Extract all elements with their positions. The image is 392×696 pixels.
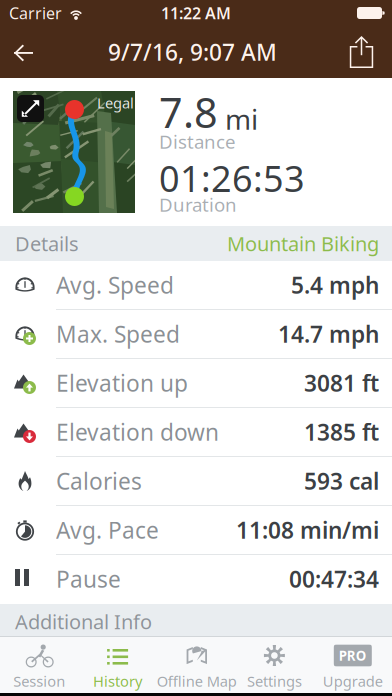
staticText: Settings [247, 671, 302, 691]
staticText: Offline Map [157, 671, 237, 691]
staticText: Session [13, 671, 65, 691]
staticText: PRO [339, 647, 367, 664]
staticText: 14.7 mph [278, 319, 379, 349]
staticText: 1385 ft [304, 417, 379, 447]
staticText: Elevation up [56, 368, 188, 398]
button[interactable]: Settings [235, 637, 314, 693]
button[interactable]: Share [337, 26, 392, 78]
staticText: 9/7/16, 9:07 AM [108, 37, 277, 67]
staticText: 7.8 [159, 85, 218, 139]
button[interactable]: Max. Speed [0, 310, 392, 359]
staticText: Legal [97, 93, 134, 112]
button[interactable]: Avg. Pace [0, 506, 392, 555]
staticText: Max. Speed [56, 319, 180, 349]
staticText: Mountain Biking [227, 230, 379, 257]
staticText: 3081 ft [304, 368, 379, 398]
staticText: Calories [56, 466, 142, 496]
button[interactable]: Pause [0, 555, 392, 604]
button[interactable]: Calories [0, 457, 392, 506]
button[interactable]: PRO [314, 637, 392, 693]
button[interactable]: Offline Map [157, 637, 235, 693]
staticText: 00:47:34 [289, 564, 379, 594]
staticText: 01:26:53 [159, 154, 305, 202]
button[interactable]: Avg. Speed [0, 261, 392, 310]
staticText: 11:22 AM [161, 2, 231, 24]
staticText: History [93, 671, 142, 691]
staticText: Pause [56, 564, 121, 594]
staticText: Carrier [9, 2, 62, 24]
staticText: Avg. Pace [56, 515, 159, 545]
staticText: Duration [159, 192, 237, 217]
button[interactable]: History [78, 637, 157, 693]
staticText: Distance [159, 129, 236, 154]
staticText: 593 cal [304, 466, 379, 496]
button[interactable]: Elevation down [0, 408, 392, 457]
staticText: Upgrade [323, 671, 383, 691]
staticText: 5.4 mph [291, 270, 379, 300]
staticText: Details [15, 230, 79, 257]
staticText: 11:08 min/mi [236, 515, 379, 545]
staticText: Elevation down [56, 417, 219, 447]
staticText: mi [225, 100, 258, 137]
staticText: Additional Info [15, 608, 152, 635]
staticText: Avg. Speed [56, 270, 174, 300]
button[interactable]: Back [0, 26, 48, 78]
button[interactable]: Elevation up [0, 359, 392, 408]
button[interactable]: Session [0, 637, 78, 693]
